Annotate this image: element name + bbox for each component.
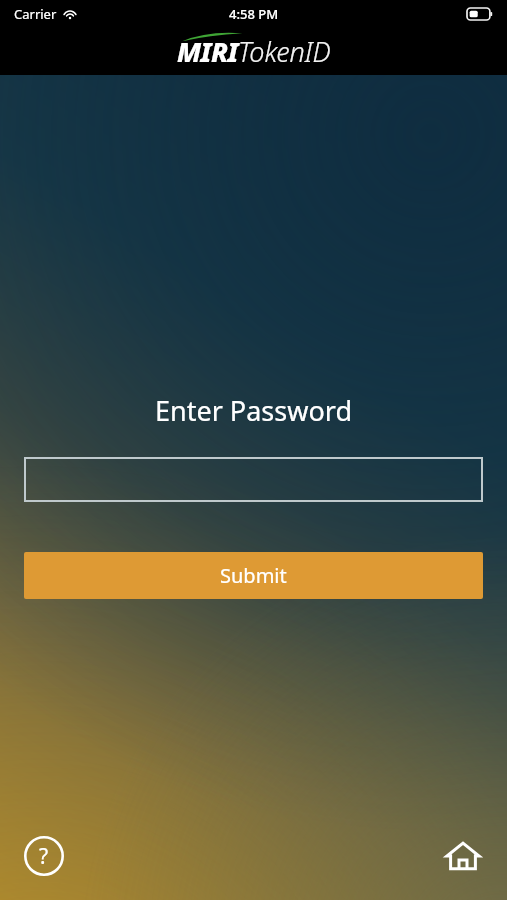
staticText: Enter Password xyxy=(155,392,352,429)
button[interactable]: Home xyxy=(439,832,487,880)
staticText: ? xyxy=(39,842,49,871)
button[interactable] xyxy=(24,457,483,502)
staticText: Carrier xyxy=(14,5,57,23)
button[interactable]: Help xyxy=(20,832,68,880)
staticText: Submit xyxy=(220,562,287,589)
staticText: 4:58 PM xyxy=(229,5,279,23)
button[interactable]: Submit xyxy=(24,552,483,599)
staticText: TokenID xyxy=(238,33,331,70)
staticText: MIRI xyxy=(177,33,238,70)
